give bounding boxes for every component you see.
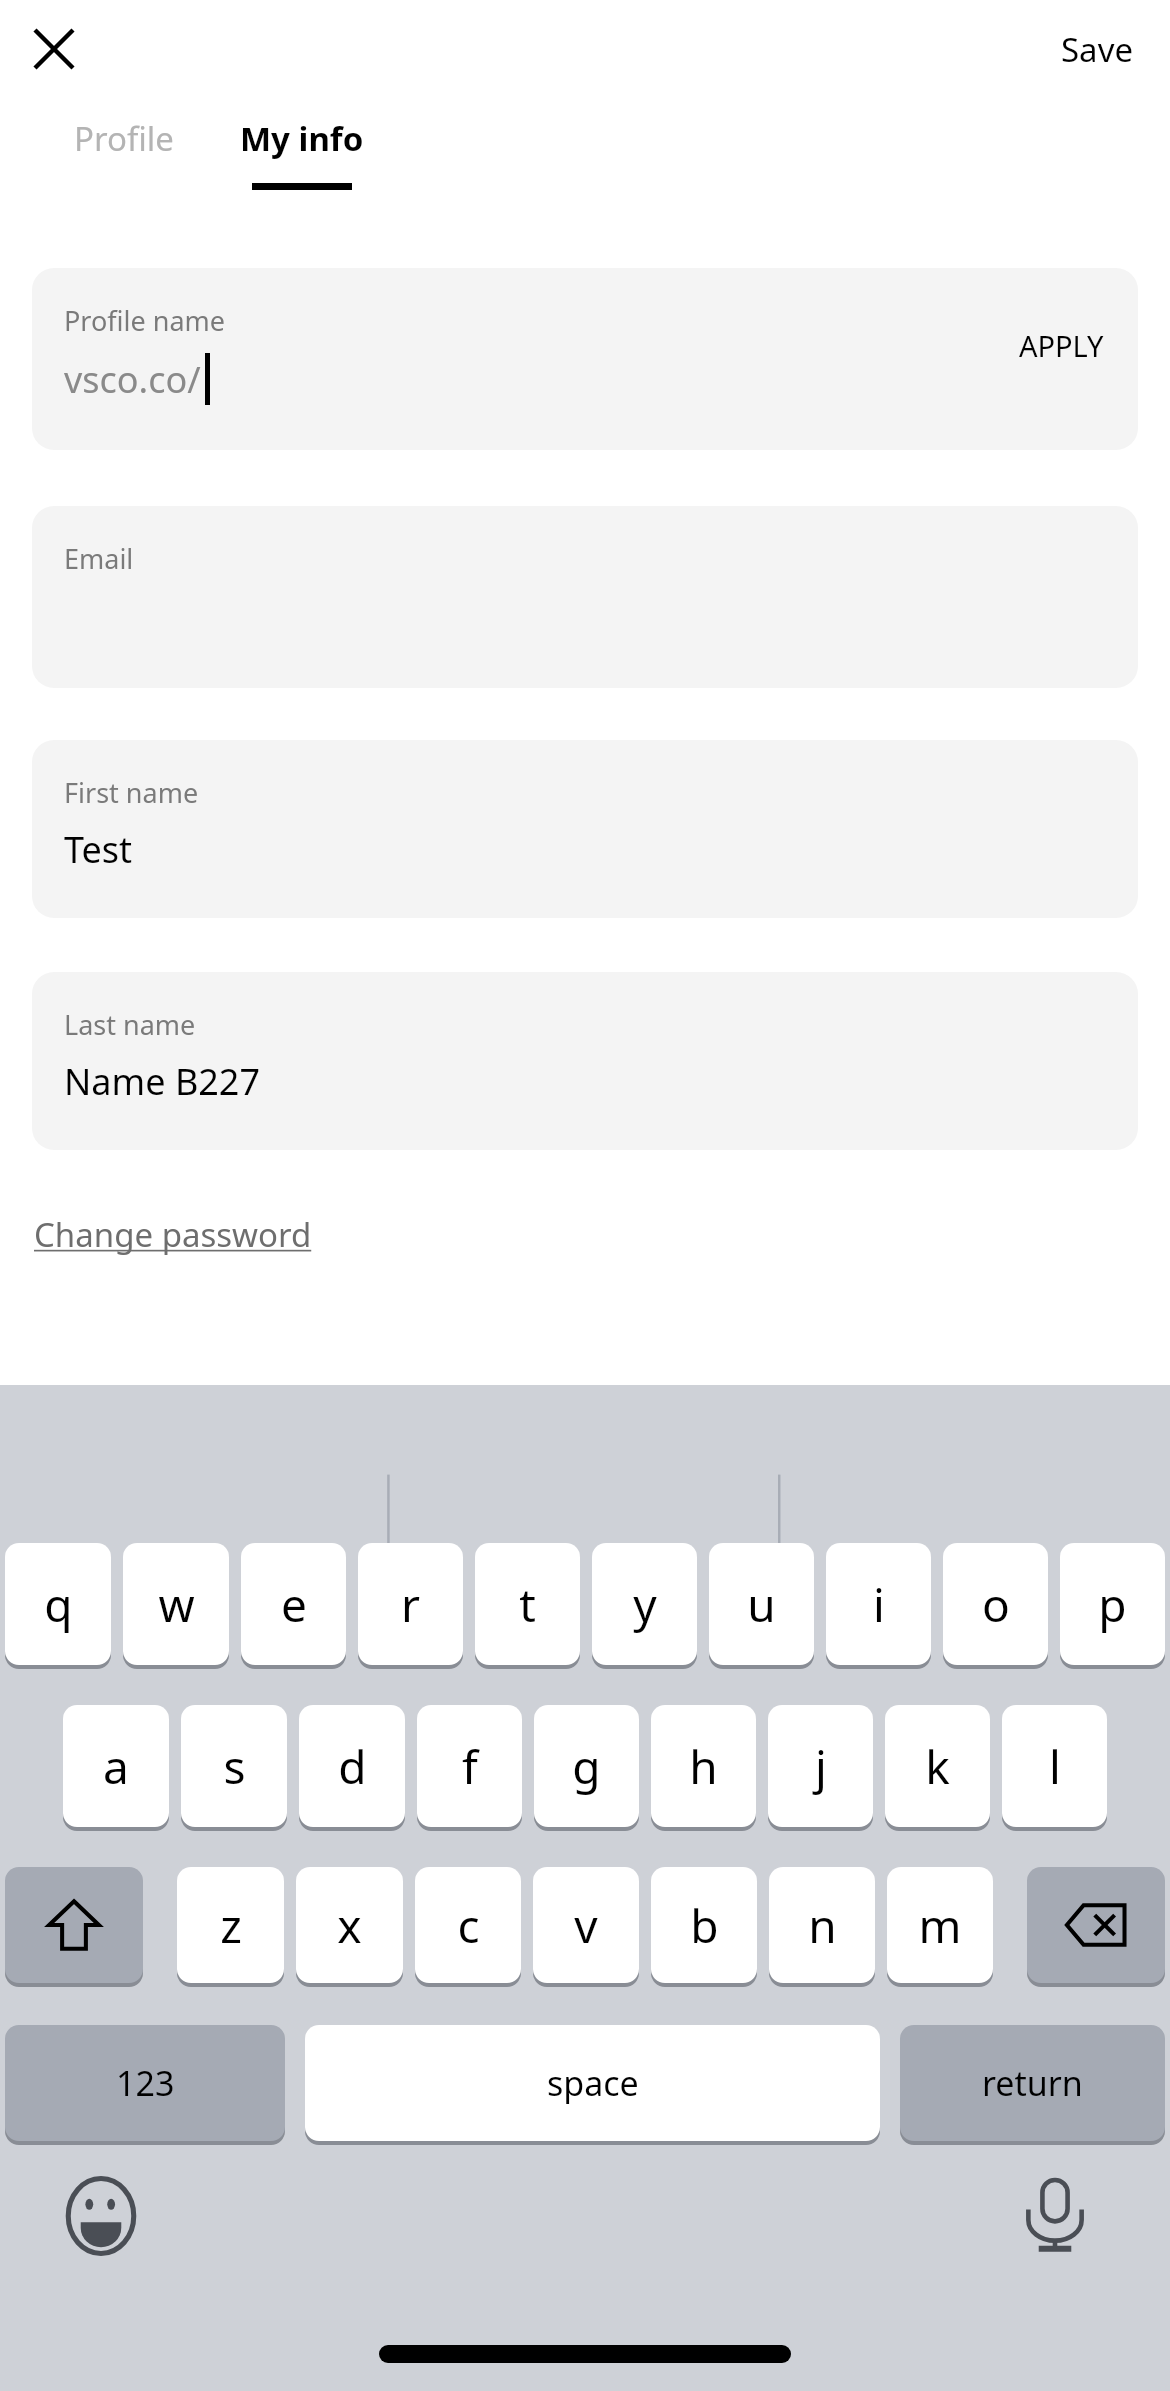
- button[interactable]: a: [63, 1705, 169, 1831]
- button[interactable]: 123: [5, 2025, 285, 2145]
- button[interactable]: q: [5, 1543, 111, 1669]
- button[interactable]: My info: [227, 98, 377, 208]
- staticText: e: [281, 1573, 307, 1636]
- button[interactable]: Emoji: [58, 2173, 144, 2259]
- staticText: Profile: [74, 116, 174, 161]
- button[interactable]: Save: [1049, 19, 1146, 80]
- button[interactable]: b: [651, 1867, 757, 1987]
- button[interactable]: u: [709, 1543, 814, 1669]
- button[interactable]: v: [533, 1867, 639, 1987]
- button[interactable]: p: [1060, 1543, 1165, 1669]
- staticText: y: [633, 1573, 657, 1636]
- button[interactable]: d: [299, 1705, 405, 1831]
- button[interactable]: r: [358, 1543, 463, 1669]
- button[interactable]: APPLY: [1007, 320, 1116, 371]
- staticText: Last name: [64, 1006, 196, 1043]
- staticText: return: [982, 2060, 1083, 2106]
- staticText: My info: [240, 116, 364, 161]
- staticText: Email: [64, 540, 134, 577]
- staticText: v: [574, 1894, 598, 1957]
- button[interactable]: k: [885, 1705, 990, 1831]
- button[interactable]: g: [534, 1705, 639, 1831]
- button[interactable]: n: [769, 1867, 875, 1987]
- button[interactable]: Last name: [32, 972, 1138, 1150]
- button[interactable]: m: [887, 1867, 993, 1987]
- staticText: p: [1098, 1573, 1127, 1636]
- button[interactable]: Profile name: [32, 268, 1138, 450]
- staticText: Test: [64, 825, 133, 874]
- button[interactable]: l: [1002, 1705, 1107, 1831]
- staticText: i: [873, 1573, 885, 1636]
- staticText: 123: [116, 2060, 175, 2106]
- staticText: m: [918, 1894, 962, 1957]
- button[interactable]: o: [943, 1543, 1048, 1669]
- staticText: z: [220, 1894, 242, 1957]
- button[interactable]: t: [475, 1543, 580, 1669]
- staticText: h: [689, 1735, 718, 1798]
- button[interactable]: return: [900, 2025, 1165, 2145]
- staticText: n: [808, 1894, 837, 1957]
- button[interactable]: x: [296, 1867, 403, 1987]
- button[interactable]: j: [768, 1705, 873, 1831]
- staticText: Save: [1061, 27, 1134, 72]
- button[interactable]: i: [826, 1543, 931, 1669]
- button[interactable]: c: [415, 1867, 521, 1987]
- staticText: APPLY: [1019, 326, 1104, 365]
- button[interactable]: Backspace: [1027, 1867, 1165, 1987]
- staticText: vsco.co/: [64, 355, 201, 404]
- button[interactable]: w: [123, 1543, 229, 1669]
- button[interactable]: y: [592, 1543, 697, 1669]
- staticText: f: [462, 1735, 478, 1798]
- staticText: d: [338, 1735, 367, 1798]
- staticText: x: [337, 1894, 362, 1957]
- staticText: g: [572, 1735, 601, 1798]
- staticText: Name B227: [64, 1057, 261, 1106]
- button[interactable]: First name: [32, 740, 1138, 918]
- staticText: First name: [64, 774, 199, 811]
- button[interactable]: Voice input: [1012, 2171, 1098, 2257]
- staticText: Change password: [34, 1212, 312, 1257]
- button[interactable]: Close: [20, 15, 88, 83]
- button[interactable]: z: [177, 1867, 284, 1987]
- button[interactable]: space: [305, 2025, 880, 2145]
- button[interactable]: Change password: [32, 1212, 312, 1257]
- staticText: r: [401, 1573, 420, 1636]
- button[interactable]: e: [241, 1543, 346, 1669]
- staticText: j: [815, 1735, 827, 1798]
- staticText: w: [158, 1573, 195, 1636]
- staticText: space: [547, 2060, 639, 2106]
- button[interactable]: Shift: [5, 1867, 143, 1987]
- staticText: o: [982, 1573, 1010, 1636]
- staticText: s: [223, 1735, 246, 1798]
- button[interactable]: s: [181, 1705, 287, 1831]
- staticText: c: [457, 1894, 480, 1957]
- button[interactable]: f: [417, 1705, 522, 1831]
- staticText: t: [519, 1573, 536, 1636]
- staticText: a: [103, 1735, 129, 1798]
- staticText: q: [44, 1573, 73, 1636]
- staticText: k: [925, 1735, 950, 1798]
- staticText: Profile name: [64, 302, 226, 339]
- staticText: b: [690, 1894, 719, 1957]
- button[interactable]: h: [651, 1705, 756, 1831]
- button[interactable]: Profile: [46, 98, 201, 208]
- button[interactable]: Email: [32, 506, 1138, 688]
- staticText: l: [1049, 1735, 1061, 1798]
- staticText: u: [747, 1573, 776, 1636]
